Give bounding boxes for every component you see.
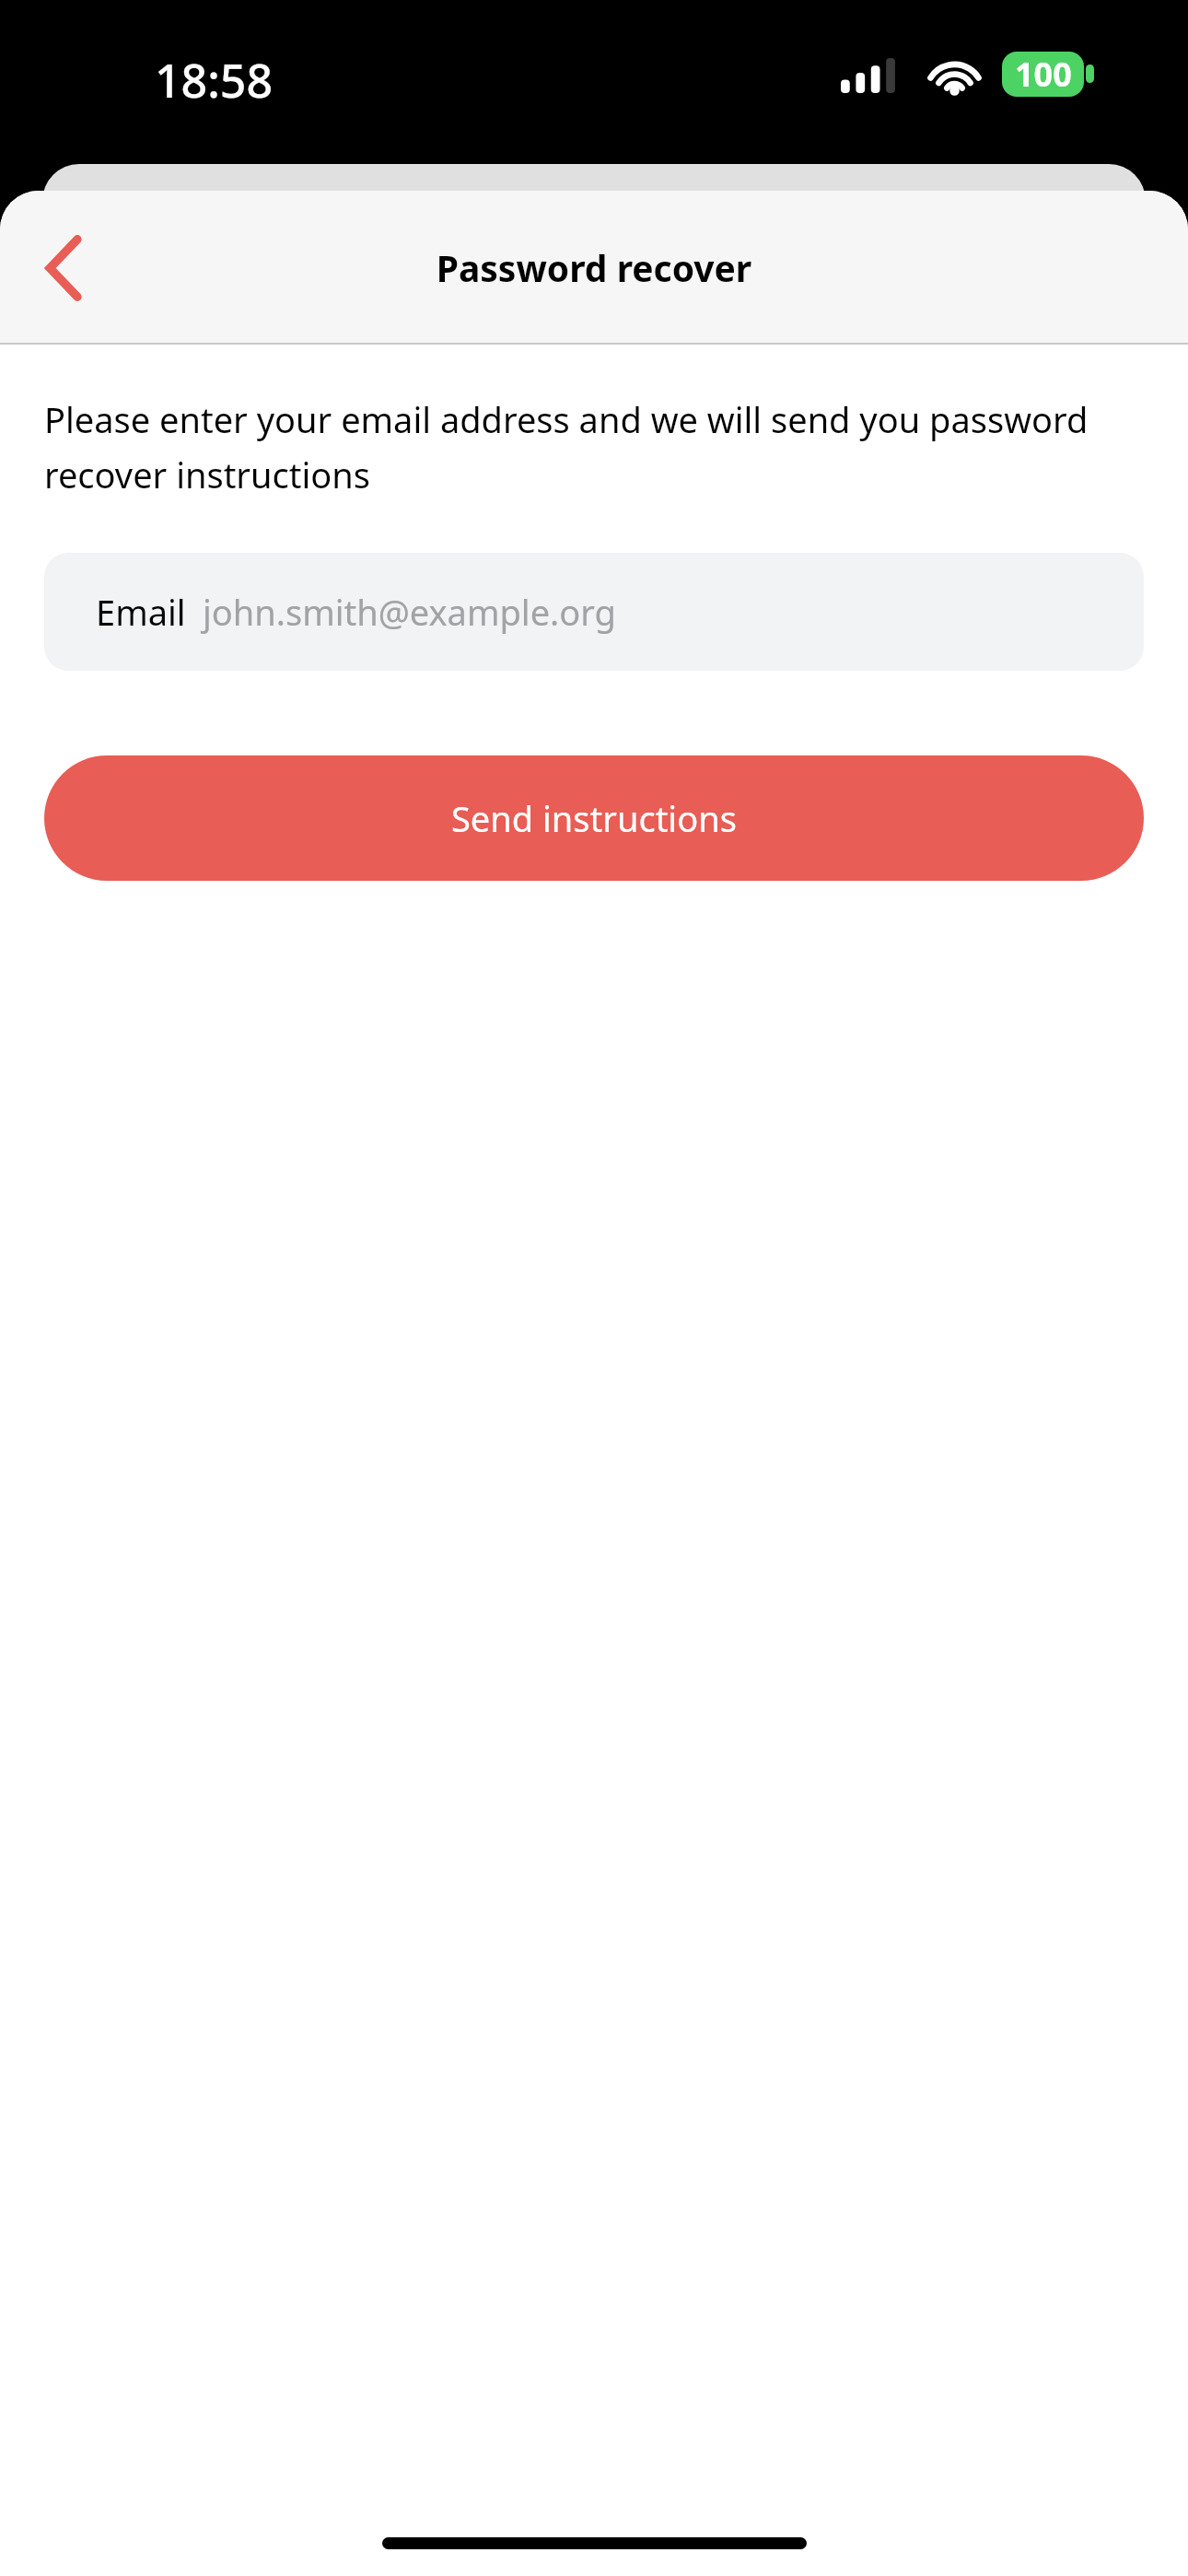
button[interactable]: Back [13,217,116,320]
staticText: Please enter your email address and we w… [44,395,1155,498]
button[interactable]: Email [44,553,1144,671]
staticText: 18:58 [155,49,273,111]
staticText: Send instructions [451,794,737,842]
staticText: 100 [1015,52,1072,97]
staticText: Email [96,588,186,636]
button[interactable]: Send instructions [44,755,1144,881]
staticText: Password recover [0,243,1188,292]
staticText: john.smith@example.org [203,588,616,636]
